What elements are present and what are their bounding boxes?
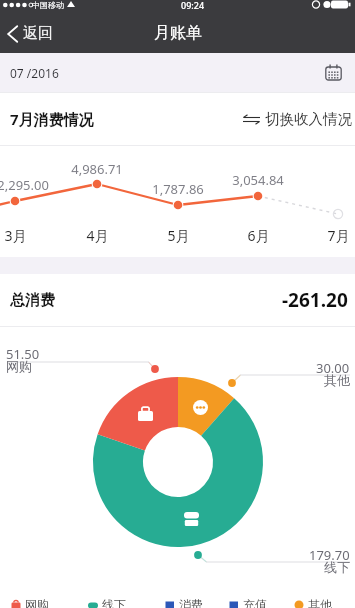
staticText: 其他 (324, 372, 350, 388)
staticText: 网购 (25, 597, 49, 608)
staticText: 1,787.86 (152, 180, 204, 198)
staticText: 月账单 (154, 23, 202, 43)
staticText: 线下 (324, 559, 350, 575)
staticText: 总消费 (10, 291, 55, 310)
button[interactable]: 消费 (165, 595, 203, 608)
staticText: 消费 (179, 597, 203, 608)
staticText: 4,986.71 (71, 160, 123, 178)
staticText: 3,054.84 (232, 171, 284, 189)
staticText: 其他 (308, 597, 332, 608)
other: Pick month (325, 64, 342, 81)
button[interactable]: 07 /2016 (0, 53, 355, 92)
button[interactable]: 切换收入情况 (233, 102, 355, 136)
staticText: 中国移动 (32, 0, 64, 10)
staticText: 3月 (4, 226, 27, 245)
staticText: 07 /2016 (10, 65, 59, 81)
staticText: 5月 (167, 226, 190, 245)
staticText: 51.50 (6, 345, 40, 363)
staticText: 30.00 (316, 359, 350, 377)
staticText: 4月 (86, 226, 109, 245)
button[interactable]: 线下 (88, 595, 126, 608)
button[interactable]: 返回 (0, 18, 65, 49)
staticText: 7月消费情况 (10, 109, 94, 129)
button[interactable]: 网购 (11, 595, 49, 608)
staticText: 切换收入情况 (265, 110, 352, 128)
staticText: 179.70 (309, 546, 350, 564)
staticText: -261.20 (282, 287, 348, 313)
staticText: 返回 (23, 24, 53, 43)
staticText: -2,295.00 (0, 176, 49, 194)
button[interactable]: 其他 (294, 595, 332, 608)
button[interactable]: 充值 (229, 595, 267, 608)
staticText: 线下 (102, 597, 126, 608)
staticText: 网购 (6, 358, 32, 374)
staticText: 6月 (247, 226, 270, 245)
staticText: 充值 (243, 597, 267, 608)
staticText: 7月 (327, 226, 350, 245)
staticText: 09:24 (181, 0, 205, 11)
